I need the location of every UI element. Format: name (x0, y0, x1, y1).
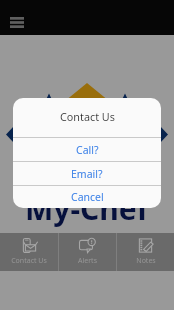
staticText: Notes (136, 256, 156, 266)
button[interactable]: Cancel (13, 186, 161, 208)
button[interactable]: Call? (13, 138, 161, 161)
button[interactable]: Alerts (59, 233, 116, 271)
staticText: Email? (71, 167, 103, 181)
staticText: My-Chef (25, 188, 149, 229)
staticText: Contact Us (60, 109, 115, 124)
staticText: Call? (76, 143, 99, 157)
button[interactable]: Open navigation menu (2, 7, 32, 37)
staticText: Alerts (78, 256, 97, 266)
staticText: Cancel (71, 190, 104, 204)
staticText: Contact Us (11, 256, 47, 266)
button[interactable]: Email? (13, 162, 161, 185)
button[interactable]: Contact Us (0, 233, 58, 271)
button[interactable]: Notes (117, 233, 174, 271)
